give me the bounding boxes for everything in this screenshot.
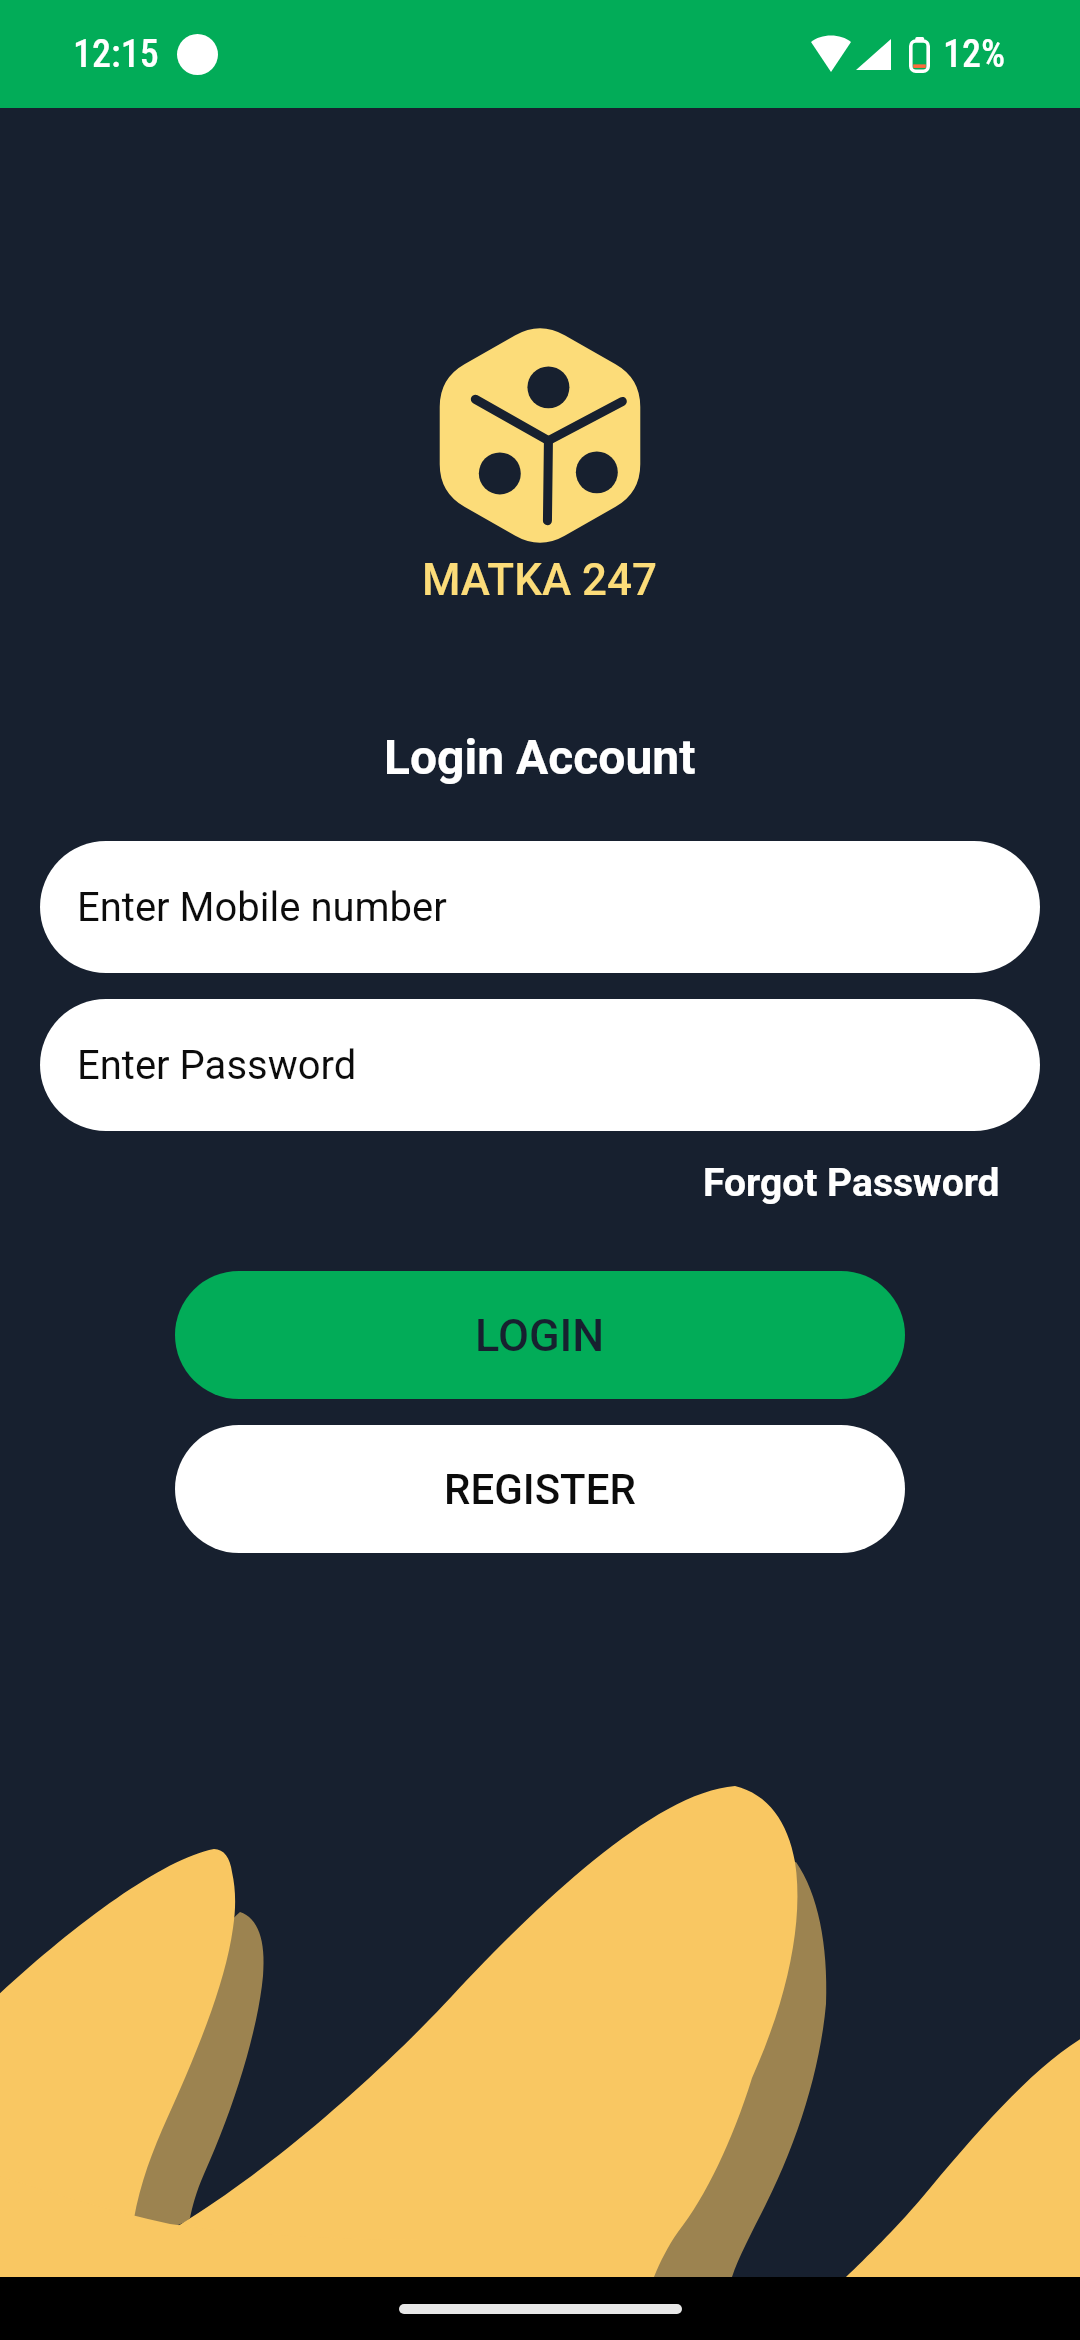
button[interactable]: LOGIN — [175, 1271, 905, 1399]
button[interactable]: Enter Password — [40, 999, 1040, 1131]
staticText: LOGIN — [475, 1309, 605, 1362]
staticText: MATKA 247 — [422, 554, 658, 606]
other: Matka 247 logo — [442, 329, 638, 542]
staticText: 12:15 — [73, 32, 159, 77]
staticText: REGISTER — [444, 1465, 636, 1514]
other: Wi-Fi — [811, 38, 851, 72]
staticText: Enter Mobile number — [77, 884, 447, 931]
other: Signal — [856, 39, 891, 70]
button[interactable]: Forgot Password — [703, 1148, 1000, 1218]
button[interactable]: REGISTER — [175, 1425, 905, 1553]
staticText: Forgot Password — [703, 1160, 1000, 1206]
staticText: 12% — [943, 32, 1006, 77]
staticText: Login Account — [384, 729, 696, 785]
button[interactable]: Enter Mobile number — [40, 841, 1040, 973]
other: Battery — [909, 37, 930, 73]
staticText: Enter Password — [77, 1042, 357, 1089]
